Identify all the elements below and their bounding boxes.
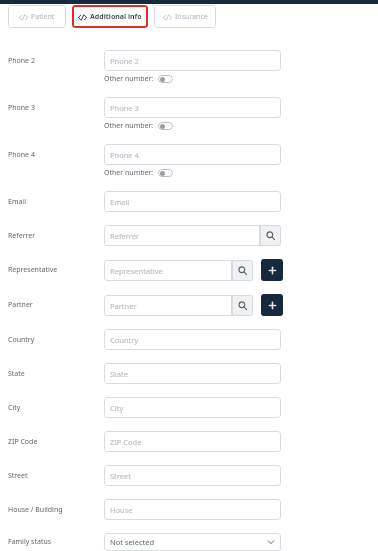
button[interactable]: Country <box>104 329 281 350</box>
staticText: Email <box>110 197 130 207</box>
staticText: Country <box>8 335 35 345</box>
button[interactable]: Representative <box>104 260 232 281</box>
staticText: Other number: <box>104 121 154 131</box>
staticText: Phone 3 <box>110 103 139 113</box>
button[interactable]: ZIP Code <box>104 431 281 452</box>
staticText: Other number: <box>104 74 154 84</box>
button[interactable]: State <box>104 363 281 384</box>
button[interactable]: City <box>104 397 281 418</box>
staticText: Partner <box>110 301 137 311</box>
staticText: Other number: <box>104 168 154 178</box>
staticText: Additional info <box>90 12 142 22</box>
staticText: Email <box>8 197 26 207</box>
staticText: Partner <box>8 300 33 310</box>
staticText: Representative <box>8 265 58 275</box>
staticText: State <box>110 369 128 379</box>
staticText: Country <box>110 335 139 345</box>
staticText: Phone 3 <box>8 103 35 113</box>
button[interactable]: Additional info <box>72 5 148 28</box>
button[interactable]: Insurance <box>154 5 216 28</box>
staticText: Family status <box>8 537 52 547</box>
staticText: Phone 2 <box>8 56 35 66</box>
staticText: Referrer <box>8 231 36 241</box>
button[interactable]: Referrer <box>104 225 260 246</box>
button[interactable]: Add <box>261 294 283 316</box>
staticText: Patient <box>31 12 55 22</box>
staticText: ZIP Code <box>8 437 38 447</box>
button[interactable]: Not selected <box>104 533 281 551</box>
button[interactable]: Search <box>232 295 253 316</box>
staticText: Insurance <box>175 12 208 22</box>
button[interactable]: House <box>104 499 281 520</box>
button[interactable]: Phone 2 <box>104 50 281 71</box>
staticText: City <box>8 403 21 413</box>
button[interactable]: Other number toggle <box>158 75 173 83</box>
staticText: Phone 2 <box>110 56 139 66</box>
button[interactable]: Partner <box>104 295 232 316</box>
button[interactable]: Other number toggle <box>158 122 173 130</box>
staticText: Street <box>8 471 28 481</box>
staticText: Phone 4 <box>110 150 139 160</box>
staticText: Phone 4 <box>8 150 35 160</box>
button[interactable]: Street <box>104 465 281 486</box>
staticText: Street <box>110 471 131 481</box>
staticText: Not selected <box>110 537 155 547</box>
staticText: City <box>110 403 124 413</box>
button[interactable]: Patient <box>8 5 66 28</box>
button[interactable]: Email <box>104 191 281 212</box>
staticText: State <box>8 369 25 379</box>
staticText: House <box>110 505 133 515</box>
button[interactable]: Search <box>232 260 253 281</box>
button[interactable]: Phone 4 <box>104 144 281 165</box>
button[interactable]: Phone 3 <box>104 97 281 118</box>
staticText: House / Building <box>8 505 63 515</box>
staticText: Representative <box>110 266 163 276</box>
staticText: ZIP Code <box>110 437 142 447</box>
staticText: Referrer <box>110 231 140 241</box>
button[interactable]: Search <box>260 225 281 246</box>
button[interactable]: Add <box>261 259 283 281</box>
button[interactable]: Other number toggle <box>158 169 173 177</box>
